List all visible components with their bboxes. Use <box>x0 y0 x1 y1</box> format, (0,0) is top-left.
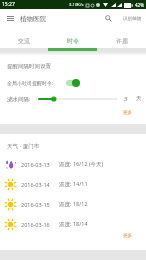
button[interactable]: 识别植物 <box>116 11 146 27</box>
staticText: 识别植物 <box>123 16 141 22</box>
staticText: 全局小吐司提醒时令: <box>7 80 54 87</box>
staticText: 2016-03-15 <box>21 201 50 208</box>
staticText: 更多 <box>123 233 132 239</box>
staticText: 浇水间隔: <box>7 95 31 103</box>
button[interactable]: Menu <box>0 9 20 28</box>
staticText: 温度: 16/12 (今天) <box>59 160 104 168</box>
staticText: 植物医院 <box>20 15 46 23</box>
button[interactable] <box>66 79 80 87</box>
staticText: 时令 <box>67 37 79 45</box>
button[interactable] <box>39 95 117 103</box>
staticText: 温度: 18/12 <box>59 200 88 208</box>
staticText: 更多 <box>123 110 132 116</box>
staticText: 天 <box>136 95 142 102</box>
staticText: 温度: 14/11 <box>59 180 88 188</box>
staticText: 天气 - 厦门市 <box>7 142 40 150</box>
staticText: 提醒间隔时间设置 <box>7 63 51 70</box>
staticText: 42% <box>135 2 144 8</box>
button[interactable]: 更多 <box>115 230 146 242</box>
staticText: 15:27 <box>2 1 15 8</box>
button[interactable]: 2016-03-16 <box>0 214 146 234</box>
button[interactable]: 许愿 <box>97 31 146 51</box>
staticText: 许愿 <box>116 37 128 45</box>
staticText: 3.10K/s <box>69 2 84 8</box>
button[interactable]: 更多 <box>115 107 146 119</box>
staticText: 2016-03-13 <box>21 161 50 168</box>
staticText: 2016-03-14 <box>21 181 50 188</box>
button[interactable]: Search <box>100 9 116 28</box>
staticText: 3 <box>124 95 128 102</box>
staticText: 温度: 18/14 <box>59 220 88 228</box>
button[interactable]: 2016-03-15 <box>0 194 146 214</box>
staticText: 交流 <box>18 37 30 45</box>
button[interactable]: 2016-03-13 <box>0 154 146 174</box>
button[interactable]: 2016-03-14 <box>0 174 146 194</box>
button[interactable]: 交流 <box>0 31 48 51</box>
button[interactable]: 时令 <box>48 31 97 51</box>
staticText: 2016-03-16 <box>21 221 50 228</box>
